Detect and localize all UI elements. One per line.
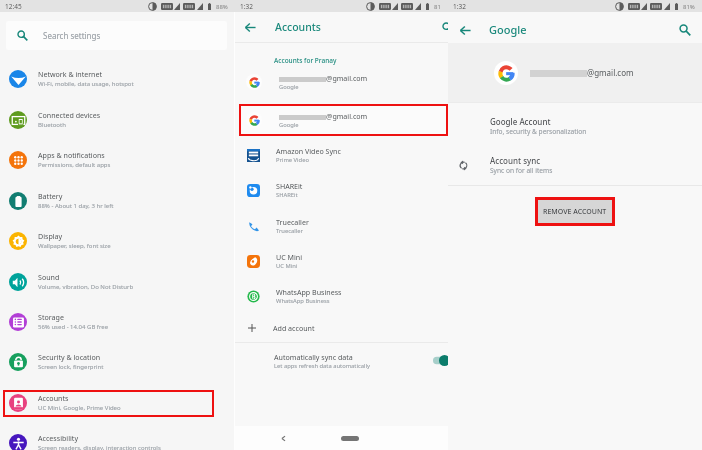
staticText: Accounts: [275, 20, 321, 34]
staticText: Automatically sync data: [274, 352, 353, 362]
staticText: 81: [434, 3, 441, 11]
button[interactable]: Apps & notifications: [0, 140, 235, 180]
staticText: Sound: [38, 272, 60, 282]
staticText: @gmail.com: [326, 111, 368, 121]
button[interactable]: Display: [0, 221, 235, 261]
staticText: 56% used - 14.04 GB free: [38, 323, 109, 331]
staticText: UC Mini, Google, Prime Video: [38, 404, 121, 412]
button[interactable]: Security & location: [0, 342, 235, 382]
staticText: Security & location: [38, 352, 101, 362]
staticText: Accounts for Pranay: [274, 56, 337, 65]
button[interactable]: Back: [456, 21, 474, 39]
button[interactable]: Search settings: [6, 21, 227, 50]
staticText: Display: [38, 231, 63, 241]
staticText: Google: [279, 83, 299, 91]
staticText: 81%: [683, 3, 695, 11]
staticText: Google Account: [490, 116, 551, 127]
button[interactable]: @gmail.com: [235, 66, 448, 98]
staticText: @gmail.com: [326, 73, 368, 83]
staticText: @gmail.com: [587, 67, 634, 78]
staticText: Wallpaper, sleep, font size: [38, 242, 111, 250]
button[interactable]: Add account: [235, 313, 448, 343]
staticText: Add account: [273, 323, 315, 333]
staticText: WhatsApp Business: [276, 287, 342, 297]
staticText: Storage: [38, 312, 64, 322]
staticText: 1:32: [453, 2, 466, 11]
staticText: REMOVE ACCOUNT: [543, 207, 607, 217]
staticText: 12:45: [5, 2, 22, 11]
button[interactable]: SHAREit: [235, 175, 448, 205]
button[interactable]: Automatically sync data toggle: [433, 355, 449, 366]
other: Home: [341, 436, 359, 441]
staticText: Network & internet: [38, 69, 103, 79]
button[interactable]: REMOVE ACCOUNT: [538, 200, 612, 223]
staticText: 88% - About 1 day, 3 hr left: [38, 202, 114, 210]
button[interactable]: Accounts: [0, 383, 235, 423]
staticText: Truecaller: [276, 217, 309, 227]
button[interactable]: Account sync: [448, 148, 702, 182]
staticText: Let apps refresh data automatically: [274, 362, 370, 370]
other: Back: [280, 435, 287, 442]
staticText: Amazon Video Sync: [276, 146, 341, 156]
staticText: SHAREit: [276, 181, 303, 191]
button[interactable]: Search: [676, 21, 694, 39]
staticText: Account sync: [490, 155, 541, 166]
staticText: Bluetooth: [38, 121, 66, 129]
staticText: Volume, vibration, Do Not Disturb: [38, 283, 134, 291]
button[interactable]: UC Mini: [235, 246, 448, 276]
button[interactable]: Accessibility: [0, 423, 235, 450]
staticText: Google: [489, 22, 527, 37]
staticText: Battery: [38, 191, 63, 201]
staticText: Connected devices: [38, 110, 101, 120]
button[interactable]: @gmail.com: [448, 43, 702, 102]
staticText: Screen lock, fingerprint: [38, 363, 104, 371]
button[interactable]: Network & internet: [0, 59, 235, 99]
staticText: Apps & notifications: [38, 150, 105, 160]
staticText: Search settings: [43, 30, 101, 41]
button[interactable]: @gmail.com: [235, 104, 448, 136]
staticText: UC Mini: [276, 262, 298, 270]
staticText: WhatsApp Business: [276, 297, 330, 305]
staticText: UC Mini: [276, 252, 302, 262]
button[interactable]: Connected devices: [0, 100, 235, 140]
staticText: 1:32: [240, 2, 253, 11]
button[interactable]: Battery: [0, 181, 235, 221]
button[interactable]: Automatically sync data: [235, 347, 448, 374]
staticText: Accessibility: [38, 433, 79, 443]
button[interactable]: Truecaller: [235, 211, 448, 241]
staticText: Truecaller: [276, 227, 303, 235]
button[interactable]: Back: [242, 19, 258, 35]
staticText: Info, security & personalization: [490, 127, 587, 136]
staticText: 88%: [216, 3, 228, 11]
button[interactable]: Storage: [0, 302, 235, 342]
button[interactable]: WhatsApp Business: [235, 281, 448, 311]
staticText: Wi-Fi, mobile, data usage, hotspot: [38, 80, 134, 88]
staticText: SHAREit: [276, 191, 298, 199]
staticText: Prime Video: [276, 156, 309, 164]
button[interactable]: Amazon Video Sync: [235, 140, 448, 170]
staticText: Accounts: [38, 393, 69, 403]
staticText: Google: [279, 121, 299, 129]
staticText: Sync on for all items: [490, 166, 553, 175]
staticText: Screen readers, display, interaction con…: [38, 444, 161, 450]
button[interactable]: Sound: [0, 262, 235, 302]
staticText: Permissions, default apps: [38, 161, 111, 169]
button[interactable]: Google Account: [448, 109, 702, 143]
button[interactable]: Search: [439, 19, 455, 35]
